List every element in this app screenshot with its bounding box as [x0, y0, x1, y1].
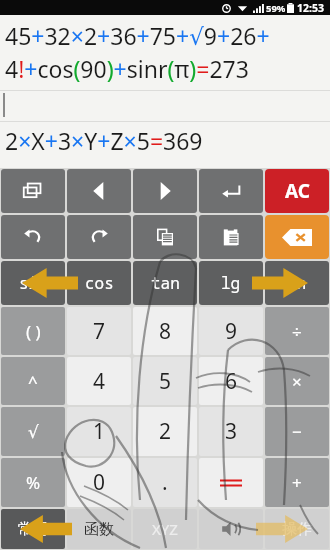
staticText: AC	[285, 178, 310, 204]
button[interactable]: 1	[67, 407, 131, 456]
staticText: ÷	[292, 320, 302, 343]
staticText: ( )	[26, 320, 41, 343]
button[interactable]: Windows	[1, 169, 65, 213]
staticText: √	[28, 422, 39, 442]
staticText: 函数	[84, 520, 114, 539]
staticText: 4	[93, 367, 106, 396]
button[interactable]: 6	[199, 357, 263, 405]
button[interactable]: 2	[133, 407, 197, 456]
button[interactable]: 7	[67, 307, 131, 355]
button[interactable]: 0	[67, 458, 131, 507]
button[interactable]: 4	[67, 357, 131, 405]
button[interactable]: %	[1, 458, 65, 507]
button[interactable]: −	[265, 407, 329, 456]
staticText: ×	[292, 370, 302, 393]
button[interactable]: ( )	[1, 307, 65, 355]
button[interactable]: Left	[67, 169, 131, 213]
staticText: +	[292, 471, 302, 494]
staticText: .	[162, 468, 168, 497]
button[interactable]: +	[265, 458, 329, 507]
button[interactable]: Right	[133, 169, 197, 213]
staticText: 2	[159, 417, 172, 446]
button[interactable]	[199, 458, 263, 507]
button[interactable]: ln	[265, 261, 329, 305]
staticText: −	[292, 420, 302, 443]
staticText: tan	[151, 272, 180, 294]
staticText: 9	[225, 317, 238, 346]
staticText: 45+32×2+36+75+√9+26+	[5, 20, 270, 51]
button[interactable]: 操作	[265, 509, 329, 549]
button[interactable]: 3	[199, 407, 263, 456]
button[interactable]: Undo	[1, 215, 65, 259]
button[interactable]: tan	[133, 261, 197, 305]
button[interactable]: Paste	[199, 215, 263, 259]
button[interactable]: 常用	[1, 509, 65, 549]
button[interactable]: ÷	[265, 307, 329, 355]
staticText: cos	[85, 272, 114, 294]
button[interactable]: 8	[133, 307, 197, 355]
staticText: 12:53	[297, 1, 324, 15]
staticText: 8	[159, 317, 172, 346]
button[interactable]: Backspace	[265, 215, 329, 259]
button[interactable]: ^	[1, 357, 65, 405]
staticText: 6	[225, 367, 238, 396]
button[interactable]: cos	[67, 261, 131, 305]
staticText: 4!+cos(90)+sinr(π)=273	[5, 53, 249, 84]
staticText: 0	[93, 468, 106, 497]
staticText: ln	[287, 272, 307, 294]
button[interactable]: √	[1, 407, 65, 456]
button[interactable]: lg	[199, 261, 263, 305]
button[interactable]: XYZ	[133, 509, 197, 549]
staticText: 7	[93, 317, 106, 346]
staticText: 常用	[18, 520, 48, 539]
staticText: 59%	[266, 2, 286, 15]
staticText: ^	[28, 370, 38, 393]
button[interactable]: Enter	[199, 169, 263, 213]
staticText: 5	[159, 367, 172, 396]
button[interactable]: 5	[133, 357, 197, 405]
staticText: lg	[221, 272, 241, 294]
staticText: 操作	[282, 520, 312, 539]
staticText: %	[26, 471, 41, 494]
button[interactable]: Copy	[133, 215, 197, 259]
staticText: XYZ	[152, 519, 178, 539]
button[interactable]: 9	[199, 307, 263, 355]
staticText: 1	[93, 417, 106, 446]
staticText: 3	[225, 417, 238, 446]
staticText: 2×X+3×Y+Z×5=369	[5, 125, 203, 156]
button[interactable]: .	[133, 458, 197, 507]
button[interactable]: AC	[265, 169, 329, 213]
button[interactable]: Sound	[199, 509, 263, 549]
staticText: sin	[19, 272, 48, 294]
button[interactable]: ×	[265, 357, 329, 405]
button[interactable]: Redo	[67, 215, 131, 259]
button[interactable]: 函数	[67, 509, 131, 549]
button[interactable]: sin	[1, 261, 65, 305]
